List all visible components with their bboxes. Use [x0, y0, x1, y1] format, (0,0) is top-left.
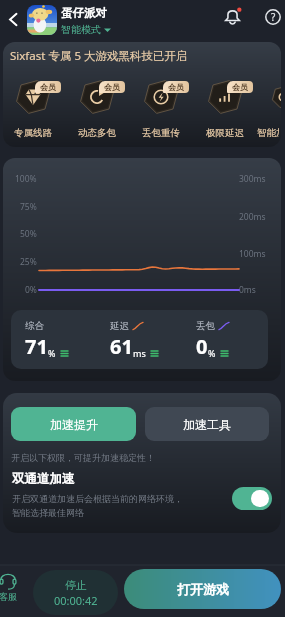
staticText: 会员 — [168, 82, 184, 92]
staticText: 客服 — [0, 591, 17, 602]
staticText: 61 — [110, 333, 133, 360]
button[interactable]: 会员 — [257, 80, 279, 140]
staticText: 智能加速 — [257, 127, 279, 139]
staticText: 300ms — [239, 173, 266, 185]
staticText: ms — [133, 347, 146, 359]
staticText: 100ms — [239, 248, 266, 260]
button[interactable]: 会员 — [193, 80, 257, 140]
staticText: 丢包 — [196, 320, 215, 332]
staticText: 0 — [196, 333, 208, 360]
staticText: 71 — [25, 333, 48, 360]
staticText: % — [208, 347, 216, 359]
staticText: 极限延迟 — [193, 127, 257, 139]
button[interactable]: Help — [260, 4, 285, 30]
staticText: 蛋仔派对 — [61, 6, 107, 20]
staticText: 延迟 — [110, 320, 129, 332]
staticText: 0% — [25, 284, 37, 296]
staticText: 智能模式 — [61, 23, 101, 36]
button[interactable]: Toggle dual channel acceleration — [232, 487, 272, 510]
staticText: 打开游戏 — [177, 581, 229, 597]
staticText: ? — [271, 10, 276, 24]
staticText: 动态多包 — [65, 127, 129, 139]
button[interactable]: 智能模式 — [61, 23, 111, 36]
staticText: 双通道加速 — [12, 471, 75, 487]
button[interactable]: 加速工具 — [145, 407, 269, 441]
staticText: 会员 — [40, 82, 56, 92]
staticText: 停止 — [65, 578, 87, 592]
staticText: 200ms — [239, 211, 266, 223]
button[interactable]: 会员 — [129, 80, 193, 140]
button[interactable]: Back — [0, 6, 26, 32]
button[interactable]: Notifications — [219, 3, 245, 29]
staticText: 丢包重传 — [129, 127, 193, 139]
staticText: 会员 — [232, 82, 248, 92]
staticText: 00:00:42 — [54, 593, 98, 608]
staticText: 100% — [15, 173, 37, 185]
button[interactable]: 打开游戏 — [124, 569, 281, 609]
staticText: 25% — [20, 256, 37, 268]
staticText: % — [48, 347, 56, 359]
staticText: 0ms — [239, 284, 256, 296]
staticText: 开启以下权限，可提升加速稳定性！ — [11, 452, 155, 463]
staticText: 50% — [20, 228, 37, 240]
staticText: 会员 — [104, 82, 120, 92]
staticText: 开启双通道加速后会根据当前的网络环境， — [12, 493, 183, 504]
button[interactable]: 加速提升 — [11, 407, 136, 441]
staticText: 综合 — [25, 320, 44, 332]
staticText: 专属线路 — [3, 127, 65, 139]
staticText: 加速提升 — [50, 417, 98, 432]
staticText: 智能选择最佳网络 — [12, 507, 84, 518]
staticText: 75% — [20, 201, 37, 213]
button[interactable]: 会员 — [65, 80, 129, 140]
button[interactable]: 停止 — [33, 570, 118, 615]
staticText: 加速工具 — [183, 417, 231, 432]
button[interactable]: Customer service — [0, 573, 23, 602]
button[interactable]: 会员 — [3, 80, 65, 140]
staticText: Sixfast 专属 5 大游戏黑科技已开启 — [10, 48, 188, 64]
